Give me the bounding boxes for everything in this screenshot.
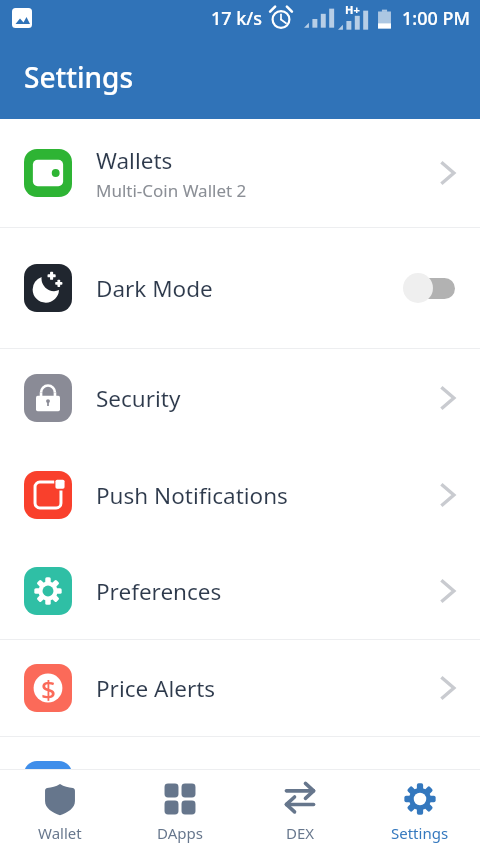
button[interactable]: Wallet [0,770,120,854]
staticText: Settings [24,58,134,96]
staticText: Wallets [96,145,173,176]
staticText: 17 k/s [211,6,263,31]
button[interactable]: DApps [120,770,240,854]
button[interactable]: DEX [240,770,360,854]
button[interactable]: Wallets [0,119,480,227]
staticText: $ [41,671,56,706]
staticText: Push Notifications [96,480,288,511]
staticText: Settings [391,823,449,843]
staticText: Multi-Coin Wallet 2 [96,179,247,202]
button[interactable]: Security [0,349,480,447]
button[interactable]: Settings [360,770,480,854]
button[interactable]: Preferences [0,543,480,639]
staticText: Preferences [96,576,222,607]
staticText: Dark Mode [96,273,400,304]
staticText: Price Alerts [96,673,216,704]
button[interactable]: Dark Mode [0,228,480,348]
staticText: Wallet [38,823,82,843]
staticText: DApps [157,823,203,843]
button[interactable]: Push Notifications [0,447,480,543]
button[interactable]: About [0,737,480,769]
staticText: Security [96,383,181,414]
staticText: 1:00 PM [402,6,470,31]
staticText: H+ [345,2,360,17]
button[interactable]: Toggle dark mode [400,270,455,306]
button[interactable]: $ [0,640,480,736]
staticText: DEX [286,823,315,843]
